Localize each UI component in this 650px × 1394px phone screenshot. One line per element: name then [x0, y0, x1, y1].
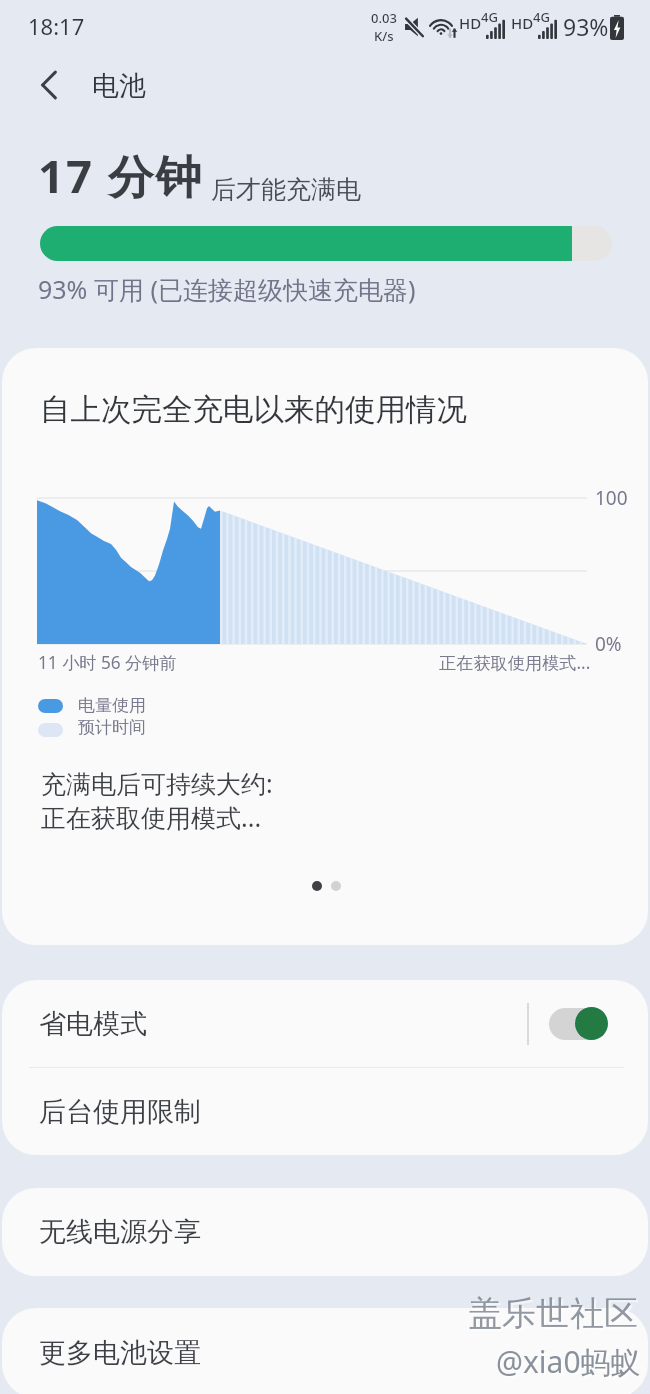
staticText: 盖乐世社区	[468, 1292, 638, 1335]
staticText: K/s	[374, 27, 394, 45]
staticText: 充满电后可持续大约:	[41, 766, 273, 800]
staticText: 0%	[595, 631, 622, 657]
staticText: @xia0蚂蚁	[496, 1341, 641, 1382]
button[interactable]: 省电模式 开关, 已开启	[547, 1006, 608, 1041]
staticText: 预计时间	[78, 717, 146, 738]
staticText: 11 小时 56 分钟前	[38, 651, 177, 674]
staticText: @xia0蚂蚁	[498, 1343, 643, 1384]
button[interactable]: Back	[25, 61, 73, 109]
staticText: 17 分钟	[38, 144, 203, 206]
button[interactable]: 后台使用限制	[2, 1068, 648, 1155]
staticText: 4G	[533, 8, 550, 26]
staticText: 93% 可用 (已连接超级快速充电器)	[38, 272, 416, 306]
staticText: 100	[595, 485, 628, 511]
staticText: 正在获取使用模式...	[41, 800, 262, 834]
staticText: 电量使用	[78, 695, 146, 716]
staticText: 更多电池设置	[39, 1336, 201, 1370]
staticText: 盖乐世社区	[470, 1294, 640, 1337]
button[interactable]: 省电模式	[2, 980, 648, 1067]
staticText: 正在获取使用模式...	[439, 651, 591, 674]
staticText: 18:17	[28, 11, 85, 41]
staticText: 后台使用限制	[39, 1095, 201, 1129]
staticText: 无线电源分享	[39, 1215, 201, 1249]
staticText: 后才能充满电	[211, 174, 361, 205]
staticText: 电池	[92, 69, 146, 103]
button[interactable]: 无线电源分享	[2, 1188, 648, 1276]
staticText: 93%	[563, 11, 609, 42]
staticText: HD	[459, 13, 482, 33]
staticText: HD	[511, 13, 534, 33]
staticText: 0.03	[371, 9, 397, 27]
button[interactable]: 更多电池设置	[2, 1308, 648, 1394]
staticText: 4G	[481, 8, 498, 26]
staticText: 省电模式	[39, 1007, 147, 1041]
staticText: 自上次完全充电以来的使用情况	[40, 391, 467, 429]
